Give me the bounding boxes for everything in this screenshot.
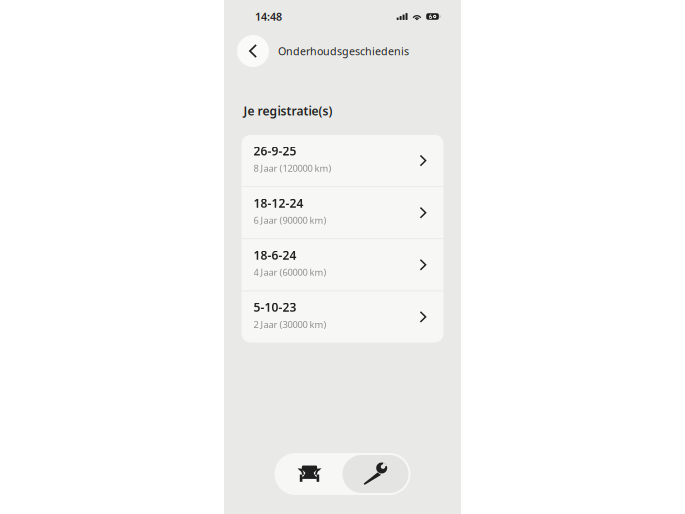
button[interactable]: 26-9-25: [241, 135, 443, 186]
staticText: Onderhoudsgeschiedenis: [278, 44, 409, 58]
staticText: 8 Jaar (120000 km): [253, 162, 331, 174]
staticText: 6 Jaar (90000 km): [253, 214, 326, 226]
staticText: Je registratie(s): [243, 103, 332, 119]
button[interactable]: 5-10-23: [241, 291, 443, 342]
button[interactable]: 18-6-24: [241, 239, 443, 290]
staticText: 5-10-23: [253, 299, 296, 315]
button[interactable]: Back: [237, 35, 269, 67]
staticText: 26-9-25: [253, 143, 296, 159]
staticText: 18-6-24: [253, 247, 296, 263]
button[interactable]: 18-12-24: [241, 187, 443, 238]
staticText: 18-12-24: [253, 195, 303, 211]
button[interactable]: Maintenance: [342, 455, 408, 493]
staticText: 2 Jaar (30000 km): [253, 318, 326, 331]
staticText: 4 Jaar (60000 km): [253, 266, 326, 278]
button[interactable]: Vehicle: [276, 455, 342, 493]
staticText: 14:48: [255, 9, 282, 24]
